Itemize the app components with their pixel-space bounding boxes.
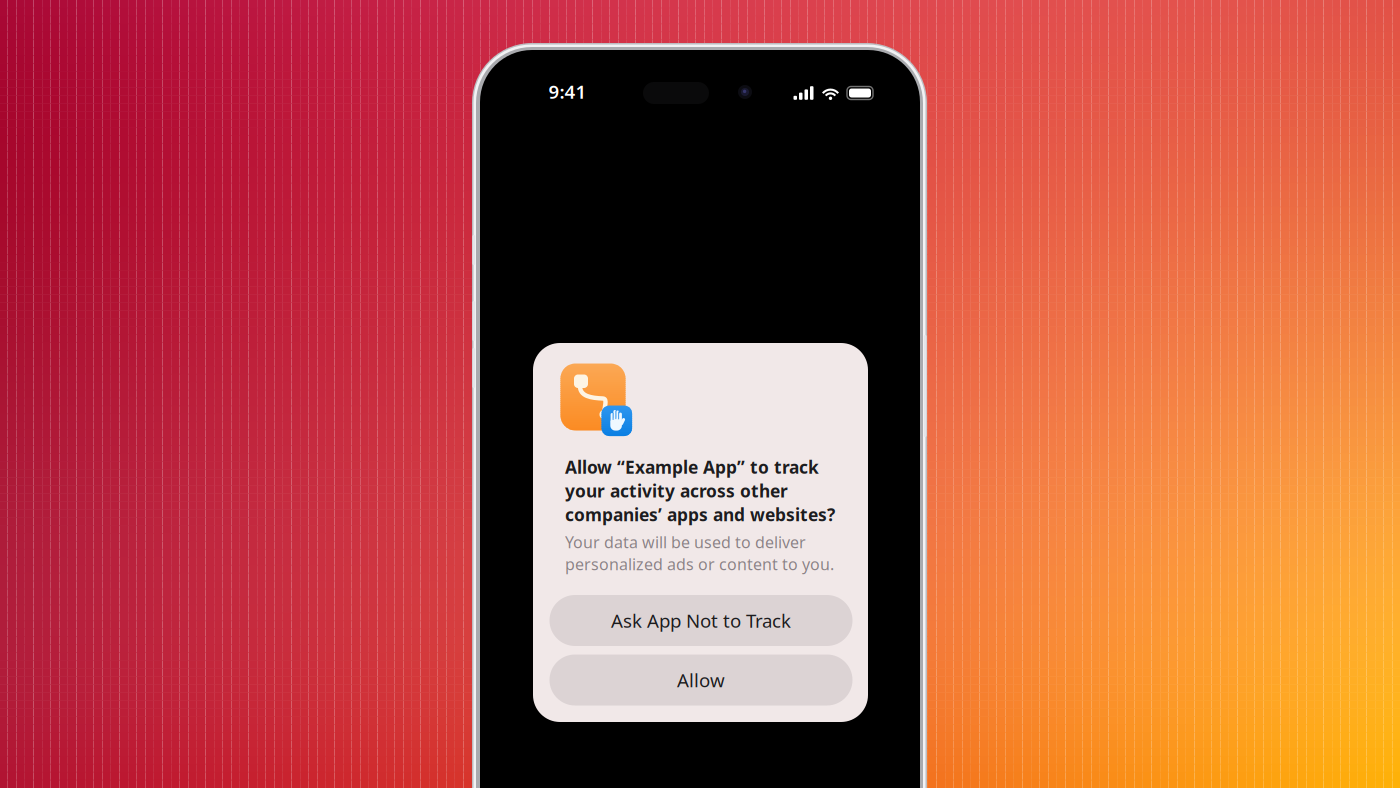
staticText: Allow	[677, 668, 725, 692]
staticText: Allow “Example App” to track	[565, 455, 819, 478]
staticText: companies’ apps and websites?	[565, 503, 835, 526]
staticText: Your data will be used to deliver	[565, 531, 806, 553]
staticText: your activity across other	[565, 479, 788, 502]
staticText: 9:41	[548, 79, 586, 104]
button[interactable]: Allow	[549, 654, 852, 705]
button[interactable]: Ask App Not to Track	[549, 595, 852, 646]
staticText: personalized ads or content to you.	[565, 553, 834, 575]
staticText: Ask App Not to Track	[611, 608, 791, 633]
